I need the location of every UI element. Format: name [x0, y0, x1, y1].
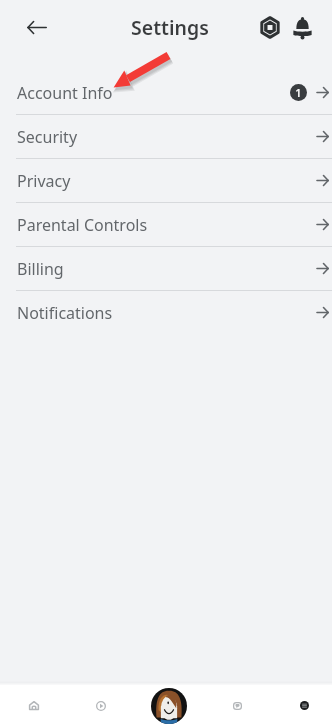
staticText: Billing	[17, 258, 64, 280]
staticText: Security	[17, 126, 78, 148]
staticText: Settings	[131, 14, 209, 41]
button[interactable]: Billing	[0, 247, 332, 291]
button[interactable]: Notifications	[284, 10, 320, 46]
staticText: Notifications	[17, 302, 113, 324]
staticText: Parental Controls	[17, 214, 148, 236]
button[interactable]: Parental Controls	[0, 203, 332, 247]
button[interactable]: Discover	[80, 685, 121, 724]
button[interactable]: Privacy	[0, 159, 332, 203]
button[interactable]: Notifications	[0, 291, 332, 335]
staticText: Privacy	[17, 170, 71, 192]
button[interactable]: Back	[16, 7, 57, 48]
staticText: 1	[295, 85, 302, 100]
button[interactable]: Robux	[252, 9, 288, 45]
staticText: Account Info	[17, 82, 113, 104]
button[interactable]: More	[284, 685, 325, 724]
button[interactable]: Chat	[217, 685, 258, 724]
button[interactable]: Home	[13, 685, 54, 724]
button[interactable]: Account Info	[0, 71, 332, 115]
button[interactable]: Avatar	[149, 686, 189, 724]
button[interactable]: Security	[0, 115, 332, 159]
